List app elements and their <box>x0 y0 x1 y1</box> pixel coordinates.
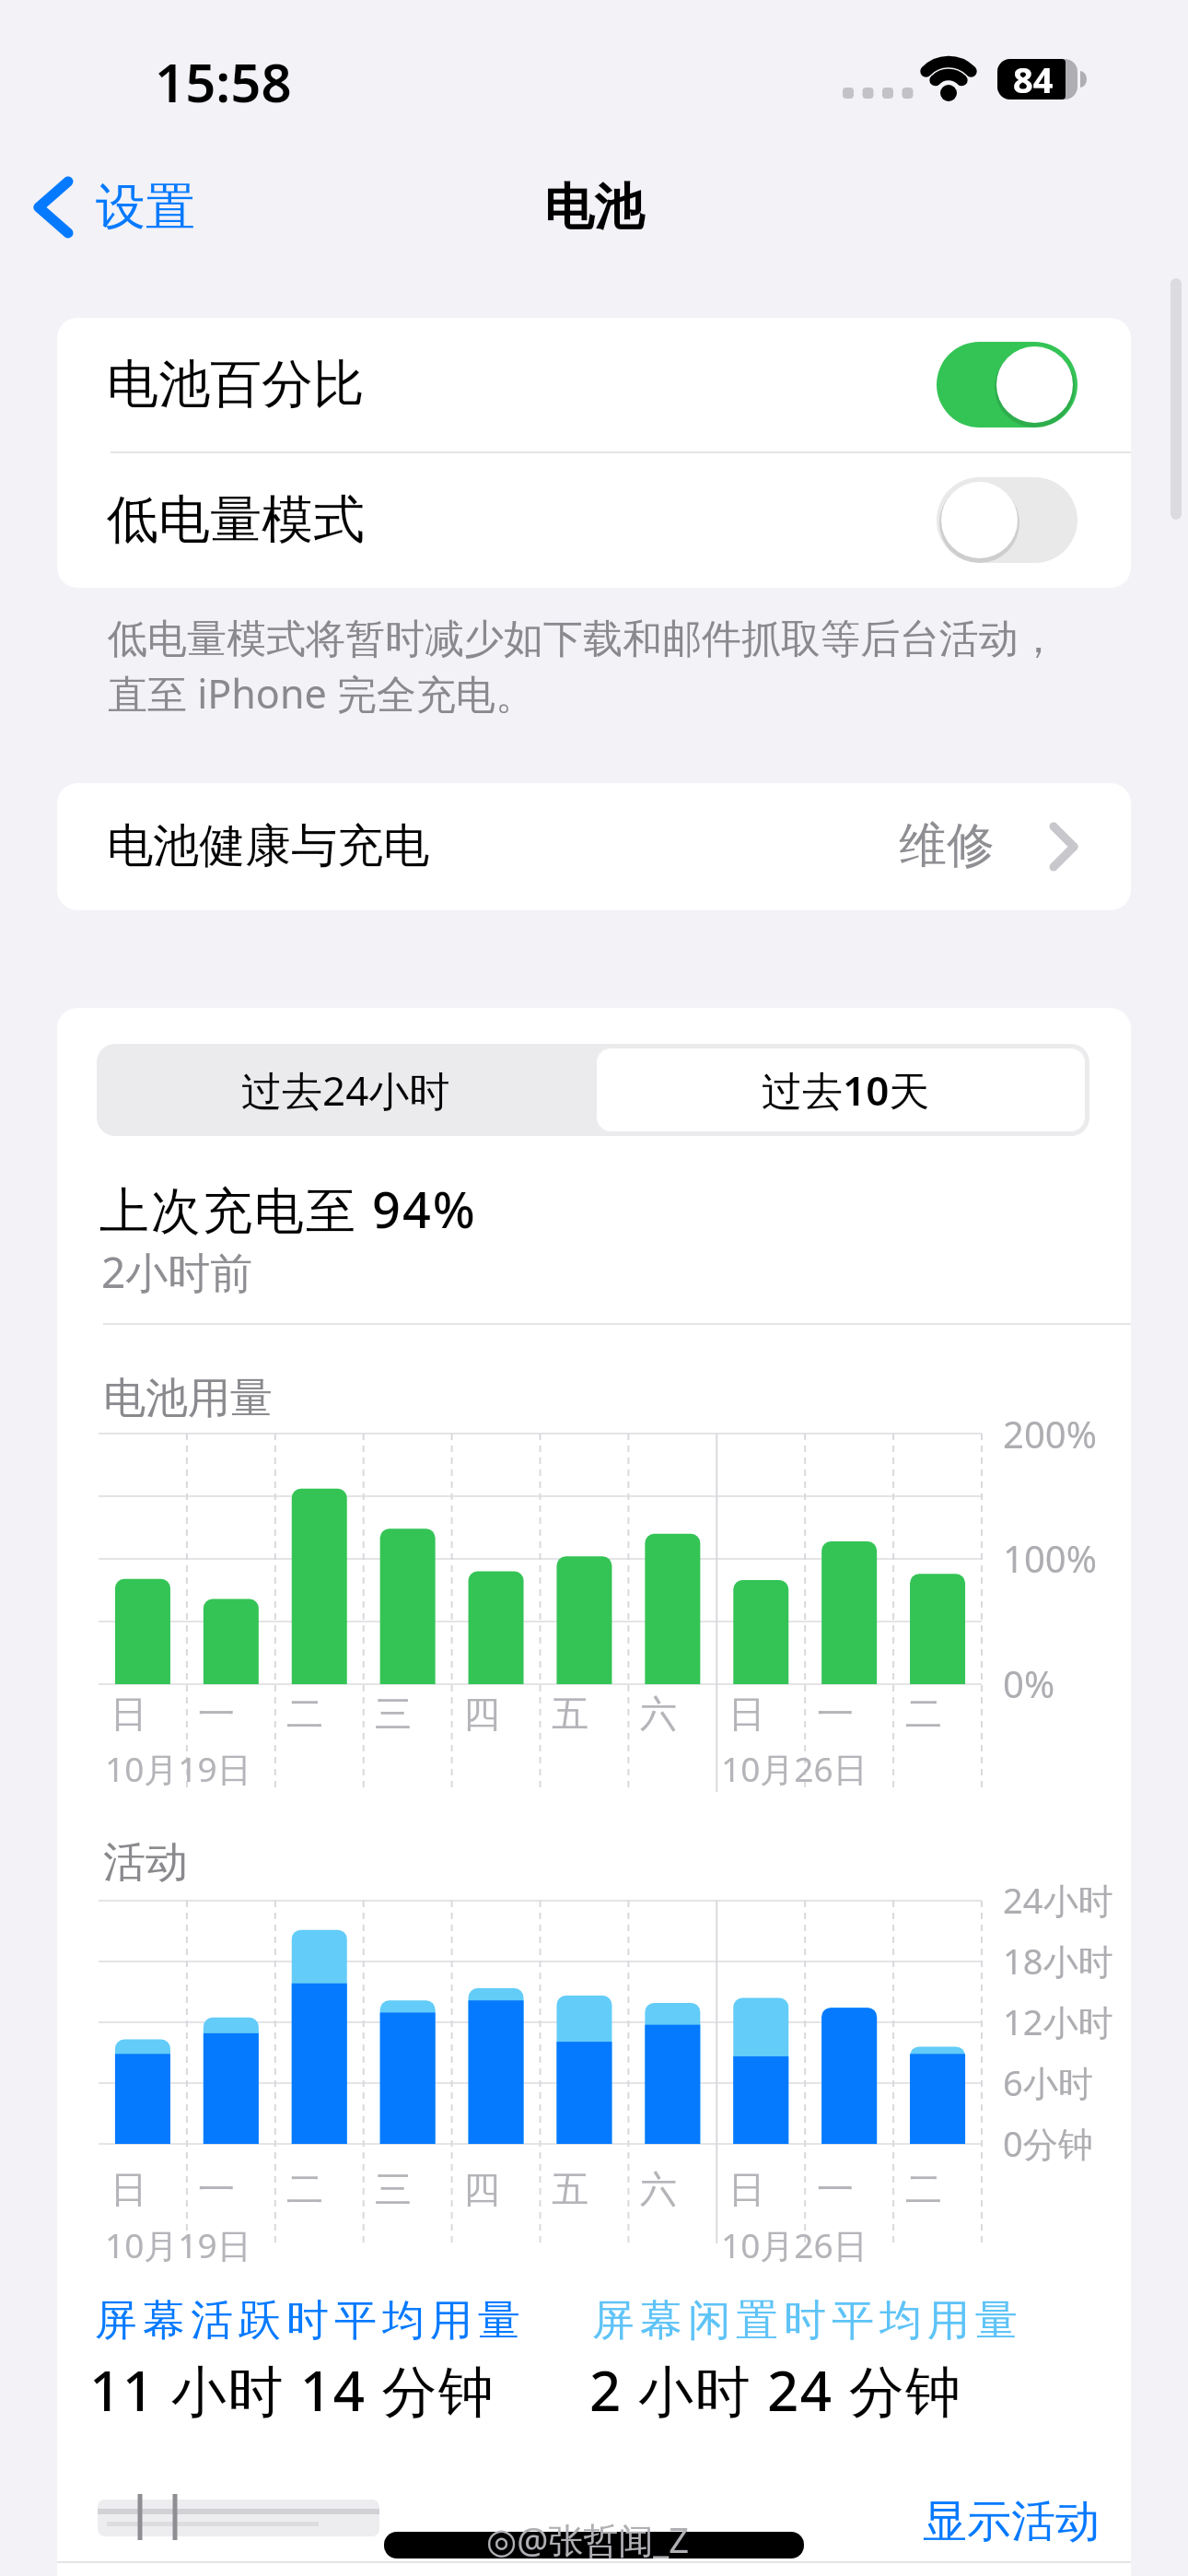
staticText: 活动 <box>103 1836 188 1890</box>
staticText: 六 <box>640 2166 677 2212</box>
button[interactable] <box>97 1044 593 1136</box>
staticText: 电池用量 <box>103 1372 273 1425</box>
staticText: 日 <box>728 1691 765 1737</box>
staticText: 过去24小时 <box>241 1062 450 1118</box>
staticText: 直至 iPhone 完全充电。 <box>108 666 535 720</box>
staticText: 二 <box>286 2166 323 2212</box>
staticText: 低电量模式 <box>107 487 365 553</box>
staticText: 日 <box>111 2166 147 2212</box>
staticText: 过去10天 <box>762 1062 930 1118</box>
staticText: 维修 <box>899 815 995 876</box>
staticText: 一 <box>817 1691 854 1737</box>
staticText: 日 <box>728 2166 765 2212</box>
staticText: 电池百分比 <box>107 352 365 417</box>
staticText: 24小时 <box>1003 1876 1113 1924</box>
staticText: 日 <box>111 1691 147 1737</box>
staticText: 2小时前 <box>101 1243 253 1301</box>
staticText: 五 <box>552 2166 588 2212</box>
button[interactable] <box>596 1048 1086 1132</box>
staticText: 一 <box>198 2166 235 2212</box>
staticText: 三 <box>375 1691 412 1737</box>
staticText: 二 <box>905 1691 942 1737</box>
staticText: 显示活动 <box>923 2494 1100 2549</box>
staticText: 电池 <box>544 176 644 239</box>
staticText: 10月19日 <box>105 1745 251 1792</box>
staticText: 11 小时 14 分钟 <box>89 2352 495 2428</box>
staticText: ◎@张哲闻_Z <box>486 2515 689 2563</box>
staticText: 设置 <box>96 176 195 239</box>
staticText: 二 <box>286 1691 323 1737</box>
staticText: 屏幕活跃时平均用量 <box>92 2294 523 2348</box>
staticText: 上次充电至 94% <box>99 1175 477 1243</box>
staticText: 五 <box>552 1691 588 1737</box>
button[interactable] <box>28 175 212 240</box>
staticText: 12小时 <box>1003 1997 1113 2045</box>
staticText: 84 <box>1013 55 1054 103</box>
staticText: 0% <box>1003 1658 1055 1708</box>
staticText: 100% <box>1003 1533 1097 1583</box>
staticText: 四 <box>463 2166 500 2212</box>
staticText: 低电量模式将暂时减少如下载和邮件抓取等后台活动， <box>108 615 1058 664</box>
staticText: 三 <box>375 2166 412 2212</box>
button[interactable] <box>912 2492 1096 2551</box>
staticText: 6小时 <box>1003 2058 1093 2106</box>
staticText: 六 <box>640 1691 677 1737</box>
staticText: 一 <box>817 2166 854 2212</box>
staticText: 屏幕闲置时平均用量 <box>589 2294 1020 2348</box>
button[interactable] <box>57 783 1131 910</box>
staticText: 18小时 <box>1003 1937 1113 1985</box>
staticText: 10月26日 <box>721 1745 868 1792</box>
staticText: 200% <box>1003 1409 1097 1458</box>
staticText: 电池健康与充电 <box>107 817 429 875</box>
staticText: 10月26日 <box>721 2221 868 2268</box>
staticText: 一 <box>198 1691 235 1737</box>
staticText: 0分钟 <box>1003 2119 1093 2167</box>
staticText: 四 <box>463 1691 500 1737</box>
staticText: 15:58 <box>155 45 292 118</box>
staticText: 10月19日 <box>105 2221 251 2268</box>
button[interactable] <box>937 342 1077 427</box>
button[interactable] <box>937 477 1077 563</box>
staticText: 2 小时 24 分钟 <box>589 2352 962 2428</box>
staticText: 二 <box>905 2166 942 2212</box>
